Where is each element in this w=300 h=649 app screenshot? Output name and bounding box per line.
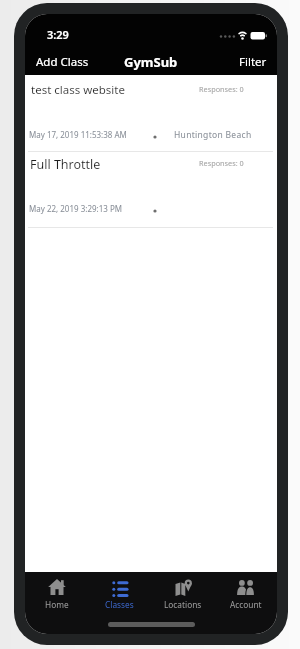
staticText: May 22, 2019 3:29:13 PM xyxy=(29,203,123,214)
staticText: Huntington Beach xyxy=(174,129,252,141)
staticText: Responses: 0 xyxy=(199,84,244,94)
staticText: Full Throttle xyxy=(30,156,101,173)
staticText: 3:29 xyxy=(47,27,69,42)
button[interactable]: Full Throttle xyxy=(25,154,277,226)
staticText: GymSub xyxy=(124,53,178,71)
staticText: Responses: 0 xyxy=(199,158,244,168)
staticText: Home xyxy=(45,599,69,610)
staticText: May 17, 2019 11:53:38 AM xyxy=(29,129,127,140)
staticText: Add Class xyxy=(36,54,89,70)
staticText: Locations xyxy=(164,599,202,610)
button[interactable]: Home xyxy=(25,572,88,634)
button[interactable]: test class website xyxy=(25,80,277,151)
button[interactable]: Account xyxy=(214,572,277,634)
staticText: Filter xyxy=(239,54,267,70)
button[interactable]: Add Class xyxy=(36,54,89,70)
button[interactable]: Classes xyxy=(88,572,151,634)
staticText: Classes xyxy=(105,599,134,610)
button[interactable]: Locations xyxy=(151,572,214,634)
staticText: test class website xyxy=(31,82,125,98)
button[interactable]: Filter xyxy=(239,54,267,70)
staticText: Account xyxy=(230,599,262,610)
